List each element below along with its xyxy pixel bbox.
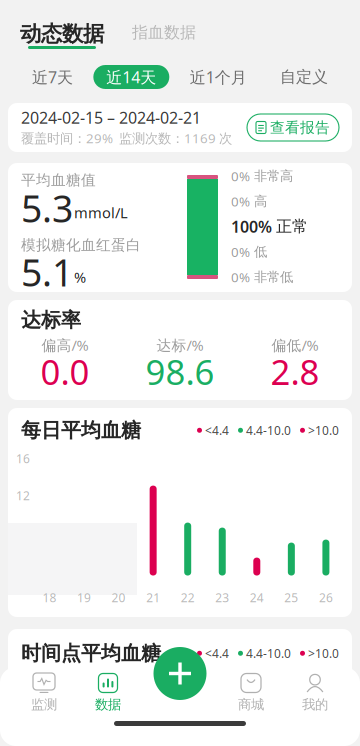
button[interactable]: 查看报告 [247, 114, 339, 141]
button[interactable]: 指血数据 [132, 24, 196, 41]
staticText: 18 [42, 590, 56, 605]
staticText: 0% [231, 243, 250, 261]
staticText: 26 [319, 590, 333, 605]
staticText: 0% [231, 268, 250, 286]
staticText: 达标/% [156, 335, 203, 355]
staticText: 商城 [238, 696, 264, 713]
button[interactable]: 监测 [12, 667, 76, 719]
staticText: 近14天 [106, 66, 156, 88]
staticText: 0% [231, 192, 250, 210]
staticText: 近1个月 [190, 66, 247, 88]
staticText: 覆盖时间：29% 监测次数：1169 次 [21, 129, 232, 147]
staticText: 偏低/% [271, 335, 318, 355]
staticText: 平均血糖值 [21, 171, 96, 189]
staticText: 我的 [302, 696, 328, 713]
staticText: 模拟糖化血红蛋白 [21, 236, 141, 254]
staticText: 正常 [276, 217, 308, 236]
staticText: 22 [181, 590, 195, 605]
button[interactable]: 近1个月 [177, 65, 260, 89]
staticText: 16 [16, 451, 30, 466]
staticText: % [74, 267, 86, 287]
staticText: <4.4 [205, 422, 229, 438]
button[interactable]: 动态数据 [20, 24, 104, 49]
staticText: 非常低 [254, 269, 293, 285]
staticText: 19 [77, 590, 91, 605]
staticText: >10.0 [308, 422, 339, 438]
staticText: 2024-02-15 – 2024-02-21 [21, 107, 201, 128]
staticText: 5.3 [21, 183, 73, 233]
staticText: 时间点平均血糖 [21, 641, 161, 666]
button[interactable]: 近14天 [93, 65, 169, 89]
staticText: 监测 [31, 696, 57, 713]
staticText: 25 [284, 590, 298, 605]
button[interactable]: 数据 [76, 667, 140, 719]
staticText: 0.0 [40, 348, 89, 394]
button[interactable]: 自定义 [267, 65, 341, 89]
staticText: >10.0 [308, 645, 339, 661]
staticText: 偏高/% [41, 335, 88, 355]
button[interactable]: 商城 [219, 667, 283, 719]
staticText: 达标率 [21, 308, 81, 332]
staticText: 查看报告 [270, 118, 330, 136]
button[interactable]: 我的 [283, 667, 347, 719]
staticText: 4.4-10.0 [246, 422, 291, 438]
staticText: 非常高 [254, 168, 293, 184]
staticText: 4.4-10.0 [246, 645, 291, 661]
staticText: 高 [254, 193, 267, 209]
staticText: 数据 [95, 696, 121, 713]
staticText: 指血数据 [132, 23, 196, 42]
button[interactable]: Add record [153, 647, 206, 700]
staticText: 12 [16, 487, 30, 503]
staticText: 98.6 [145, 348, 214, 394]
staticText: <4.4 [205, 645, 229, 661]
staticText: 5.1 [21, 247, 73, 297]
staticText: 24 [250, 590, 264, 605]
staticText: 2.8 [270, 348, 319, 394]
staticText: 近7天 [32, 66, 73, 88]
staticText: 21 [146, 590, 160, 605]
staticText: 100% [231, 216, 272, 237]
staticText: 低 [254, 244, 267, 260]
staticText: 23 [215, 590, 229, 605]
staticText: mmol/L [74, 203, 128, 222]
staticText: 动态数据 [20, 21, 104, 47]
staticText: 每日平均血糖 [21, 418, 141, 443]
staticText: 0% [231, 167, 250, 185]
staticText: 自定义 [280, 67, 328, 87]
staticText: 20 [112, 590, 126, 605]
button[interactable]: 近7天 [19, 65, 86, 89]
